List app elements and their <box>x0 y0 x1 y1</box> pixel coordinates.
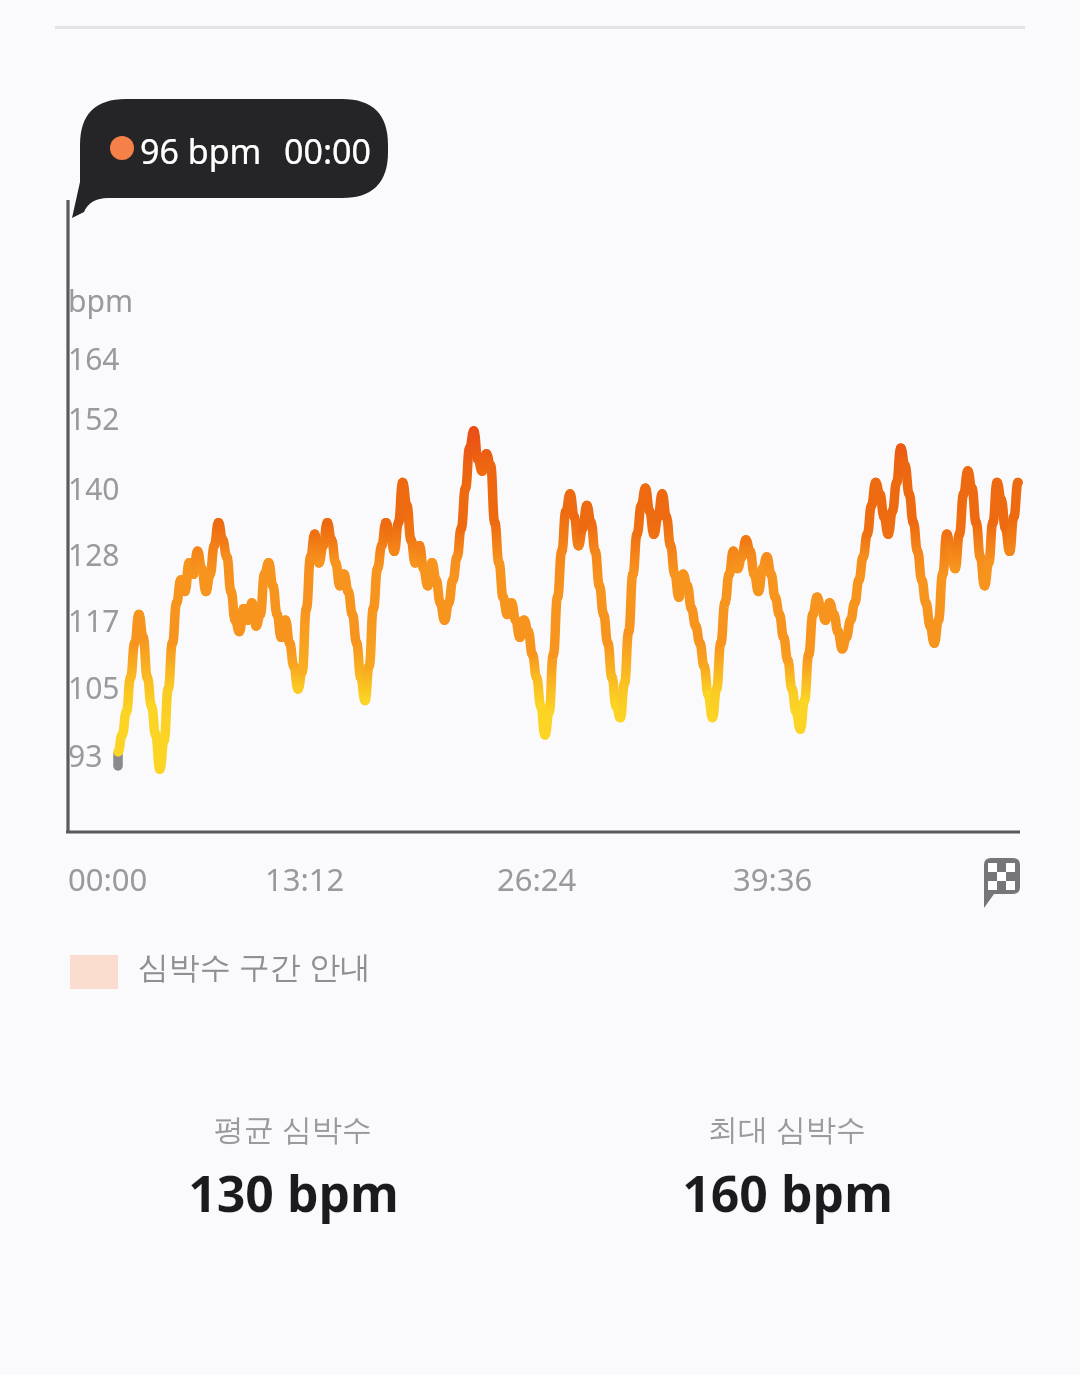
button[interactable]: Finish <box>972 850 1028 906</box>
button[interactable]: 96 bpm <box>140 128 371 174</box>
staticText: 117 <box>68 600 120 641</box>
staticText: 최대 심박수 <box>708 1108 866 1149</box>
staticText: 152 <box>68 398 120 439</box>
staticText: 164 <box>68 338 120 379</box>
staticText: 26:24 <box>497 858 577 900</box>
staticText: 00:00 <box>68 858 148 900</box>
staticText: 130 bpm <box>188 1159 399 1227</box>
staticText: 93 <box>68 735 103 776</box>
staticText: bpm <box>68 280 133 321</box>
staticText: 심박수 구간 안내 <box>138 945 372 987</box>
staticText: 160 bpm <box>682 1159 893 1227</box>
button[interactable]: 심박수 구간 안내 <box>70 945 372 987</box>
staticText: 96 bpm <box>140 128 262 174</box>
staticText: 128 <box>68 534 120 575</box>
button[interactable]: 최대 심박수 <box>587 1108 987 1227</box>
staticText: 00:00 <box>284 128 371 174</box>
staticText: 140 <box>68 468 120 509</box>
staticText: 평균 심박수 <box>214 1108 372 1149</box>
staticText: 39:36 <box>733 858 813 900</box>
staticText: 13:12 <box>265 858 345 900</box>
button[interactable]: 평균 심박수 <box>93 1108 493 1227</box>
staticText: 105 <box>68 667 120 708</box>
